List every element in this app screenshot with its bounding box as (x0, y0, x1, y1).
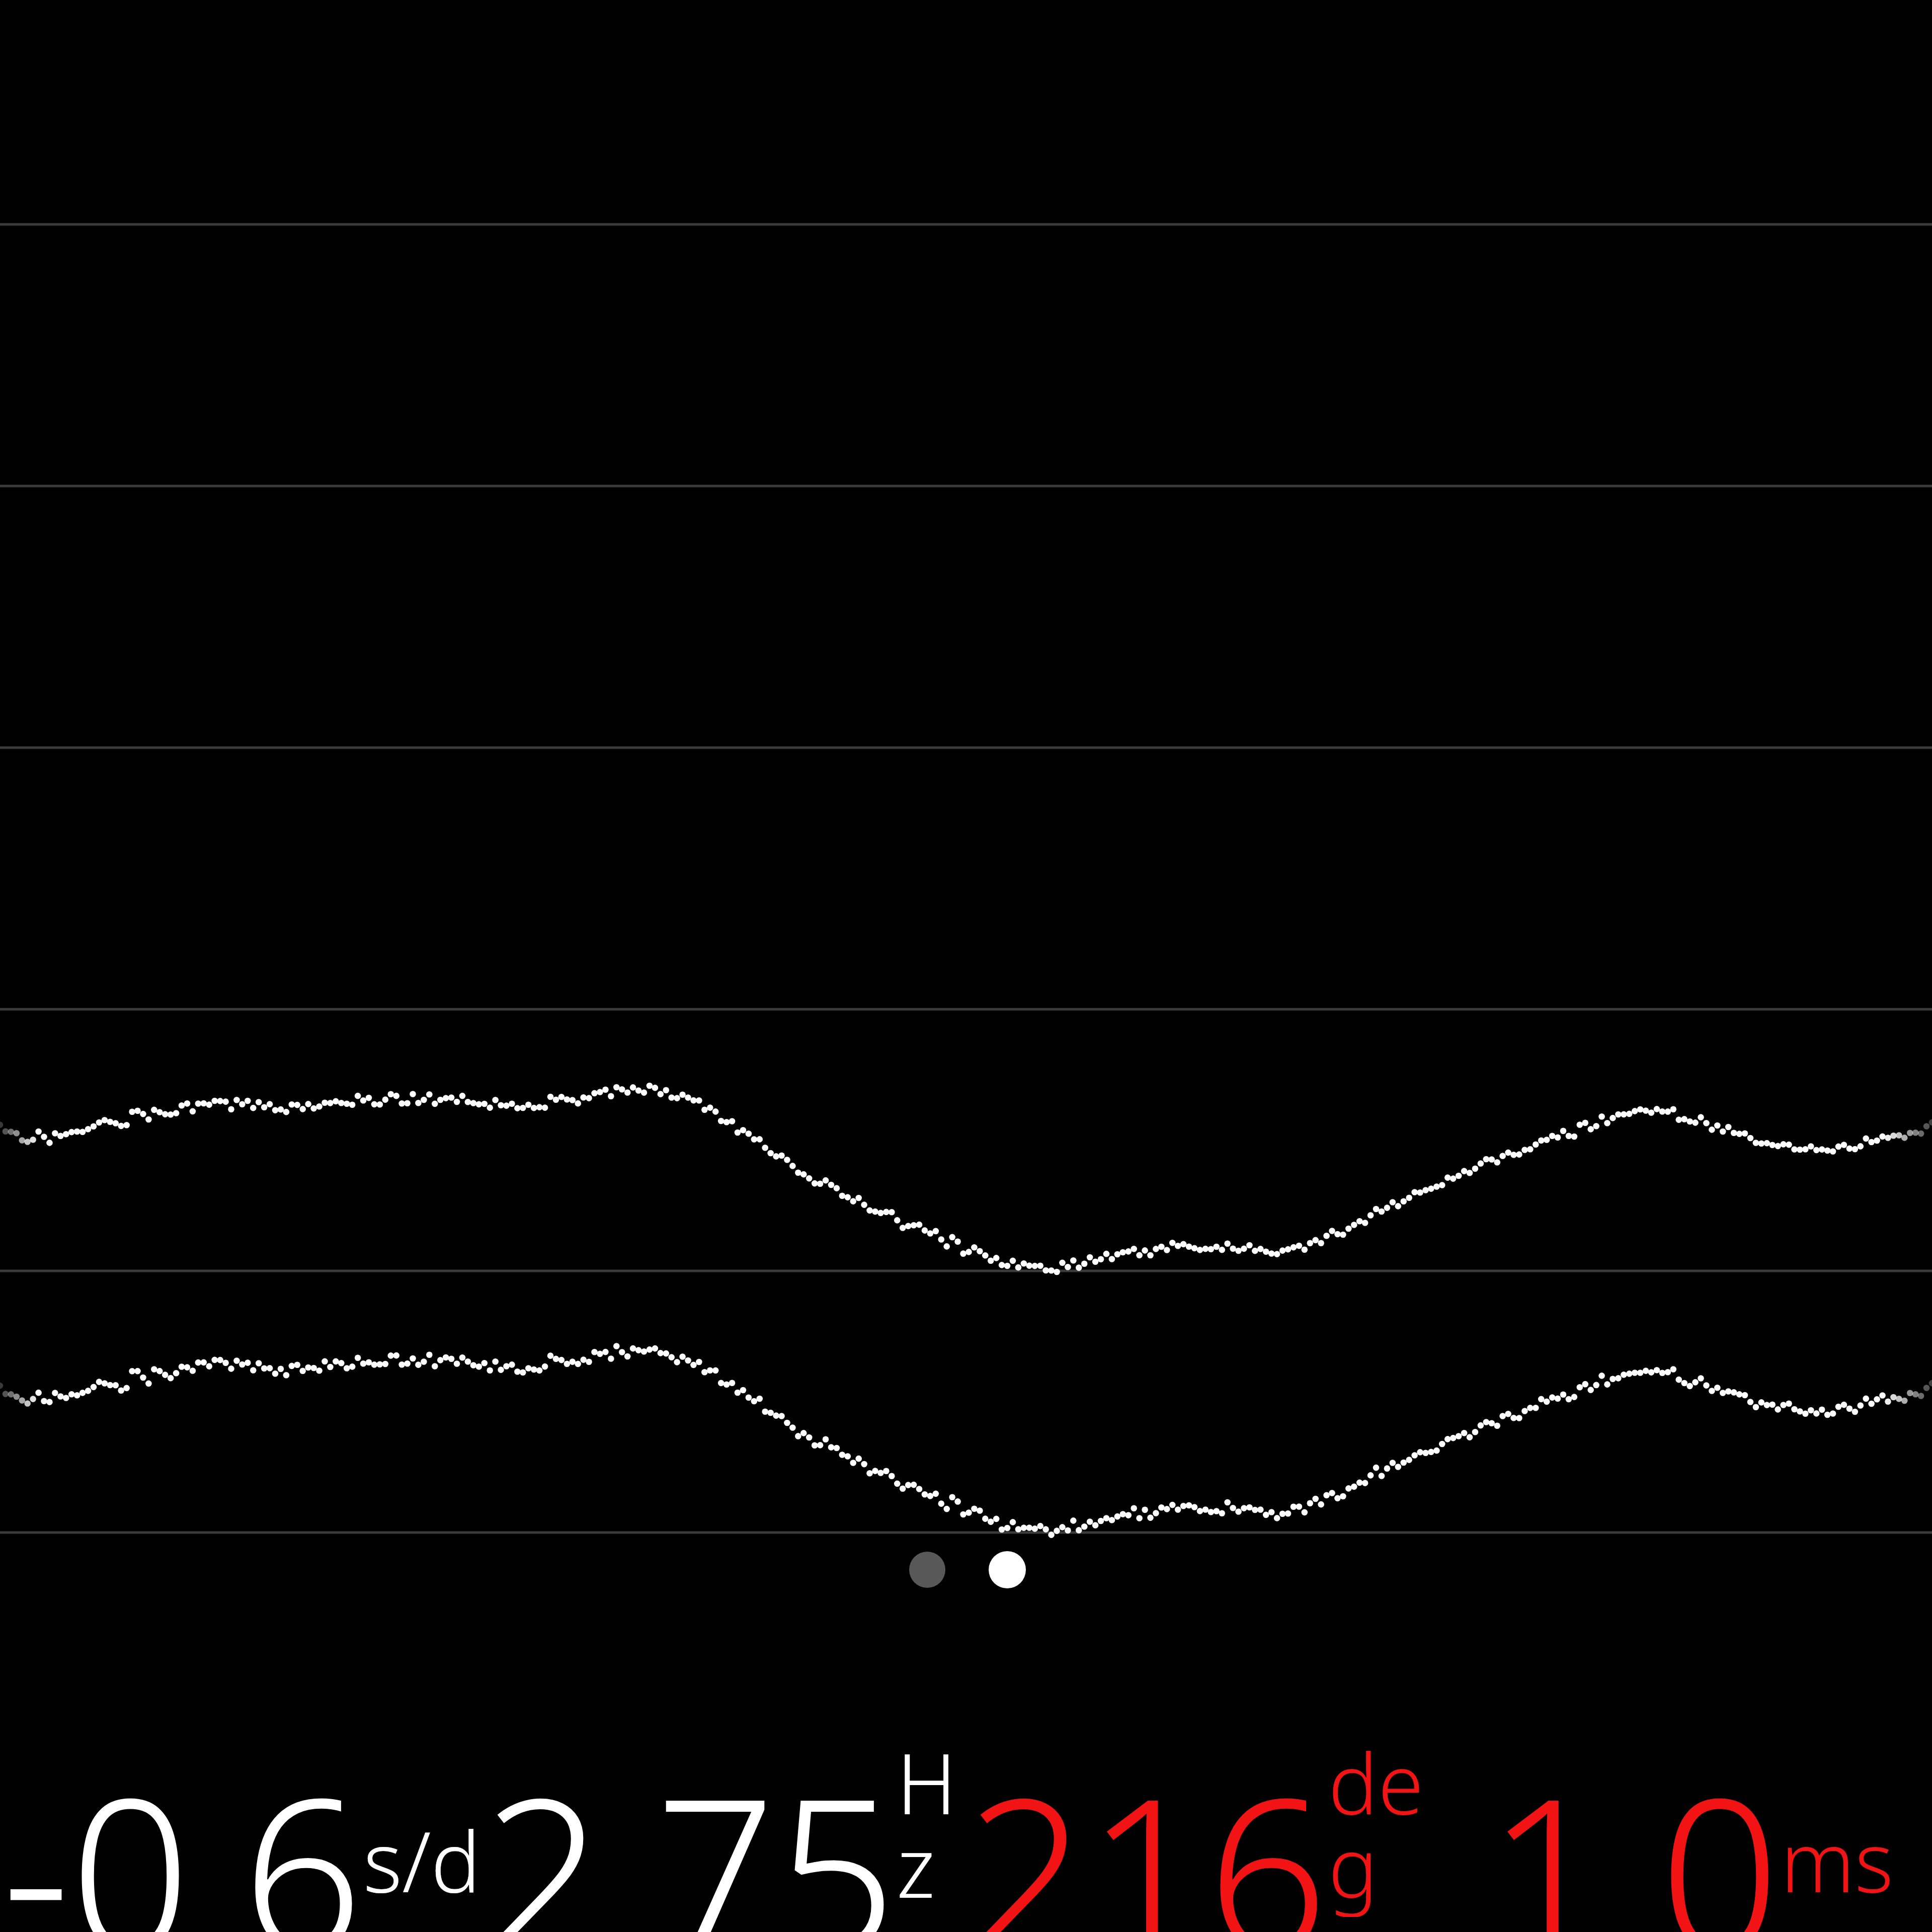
button[interactable]: FREQUENCY (483, 1726, 966, 1932)
staticText: deg (1328, 1726, 1449, 1917)
staticText: 2.75 (483, 1726, 897, 1932)
staticText: ms (1781, 1804, 1894, 1917)
button[interactable]: AVERAGE (0, 1726, 483, 1932)
staticText: s/d (363, 1804, 481, 1917)
staticText: 216 (966, 1726, 1328, 1932)
staticText: 1.0 (1487, 1726, 1781, 1932)
staticText: Hz (897, 1726, 966, 1917)
staticText: -0.6 (2, 1726, 363, 1932)
button[interactable]: BEAT ERROR (1449, 1726, 1932, 1932)
button[interactable]: AMPLITUDE (966, 1726, 1449, 1932)
